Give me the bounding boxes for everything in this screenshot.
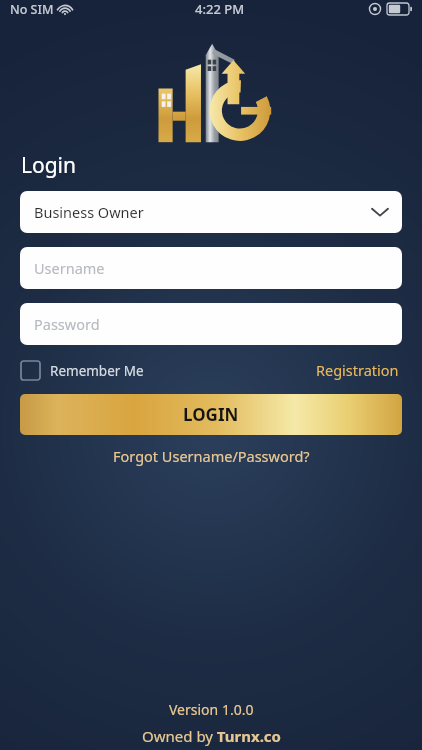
staticText: No SIM bbox=[10, 1, 54, 18]
staticText: Login bbox=[21, 151, 77, 180]
staticText: Owned by Turnx.co bbox=[142, 726, 281, 746]
button[interactable]: Forgot Username/Password? bbox=[105, 444, 318, 468]
button[interactable]: Password bbox=[20, 303, 402, 345]
staticText: 4:22 PM bbox=[195, 0, 245, 18]
button[interactable]: Business Owner bbox=[20, 191, 402, 233]
staticText: Version 1.0.0 bbox=[169, 700, 254, 719]
staticText: Business Owner bbox=[34, 202, 144, 222]
staticText: Password bbox=[34, 314, 100, 334]
button[interactable]: Remember Me bbox=[21, 361, 148, 380]
button[interactable]: Registration bbox=[314, 358, 401, 382]
staticText: Remember Me bbox=[50, 362, 144, 380]
staticText: Username bbox=[34, 258, 105, 278]
button[interactable]: Username bbox=[20, 247, 402, 289]
staticText: LOGIN bbox=[183, 403, 239, 426]
button[interactable]: LOGIN bbox=[20, 394, 402, 435]
